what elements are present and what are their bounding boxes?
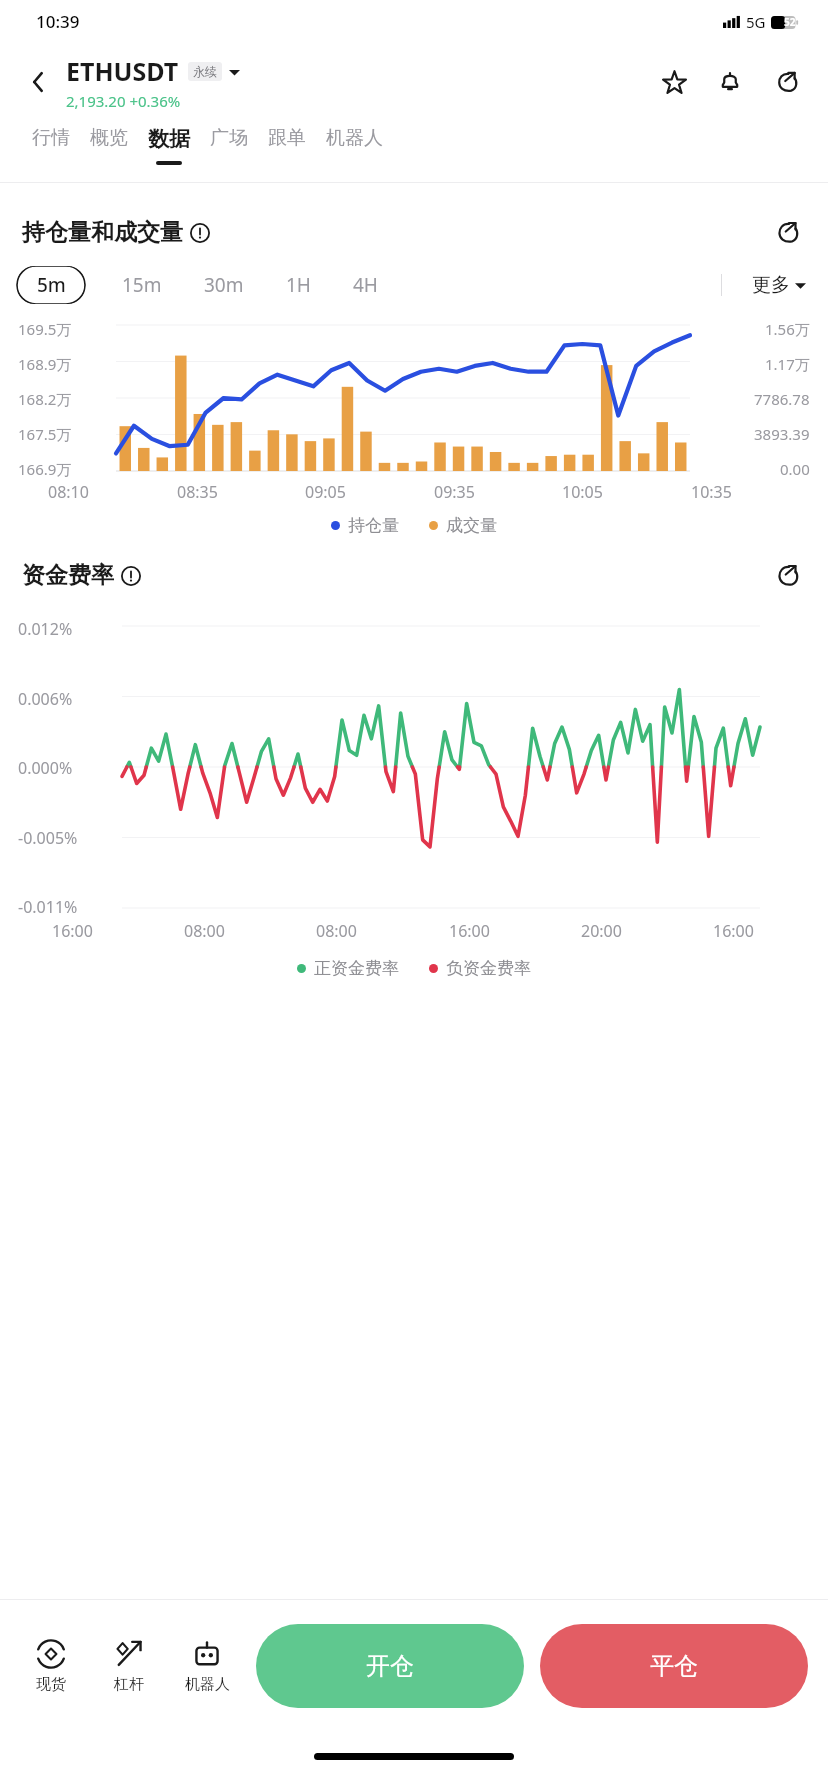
staticText: 16:00 (449, 920, 490, 942)
staticText: 08:00 (316, 920, 357, 942)
staticText: 跟单 (268, 126, 306, 150)
staticText: 10:35 (691, 481, 732, 503)
staticText: -0.011% (18, 896, 78, 918)
button[interactable]: Expand (764, 210, 808, 254)
staticText: 30m (204, 272, 244, 298)
staticText: 166.9万 (18, 459, 72, 479)
button[interactable]: Back (22, 65, 56, 99)
button[interactable]: 杠杆 (98, 1634, 160, 1698)
button[interactable]: 资金费率 (22, 561, 141, 590)
staticText: 概览 (90, 126, 128, 150)
staticText: 0.012% (18, 618, 73, 640)
button[interactable]: Favorite (652, 60, 696, 104)
staticText: 更多 (752, 273, 790, 297)
staticText: 168.9万 (18, 354, 72, 374)
staticText: 5G (746, 12, 766, 32)
staticText: 10:05 (562, 481, 603, 503)
button[interactable]: 持仓量和成交量 (22, 218, 210, 247)
staticText: 7786.78 (754, 389, 810, 409)
button[interactable]: 1H (272, 266, 325, 304)
staticText: 08:10 (48, 481, 89, 503)
staticText: 15m (122, 272, 162, 298)
staticText: 10:39 (36, 10, 80, 33)
button[interactable]: 平仓 (540, 1624, 808, 1708)
staticText: 16:00 (713, 920, 754, 942)
button[interactable]: 30m (190, 266, 258, 304)
staticText: 正资金费率 (314, 958, 399, 979)
staticText: 机器人 (185, 1675, 230, 1694)
staticText: 广场 (210, 126, 248, 150)
staticText: 52 (784, 15, 796, 29)
button[interactable]: Alerts (708, 60, 752, 104)
staticText: 持仓量 (348, 515, 399, 536)
button[interactable]: 4H (339, 266, 392, 304)
staticText: 3893.39 (754, 424, 810, 444)
staticText: 1.17万 (765, 354, 810, 374)
staticText: 行情 (32, 126, 70, 150)
staticText: 167.5万 (18, 424, 72, 444)
staticText: 现货 (36, 1675, 66, 1694)
staticText: 成交量 (446, 515, 497, 536)
staticText: 168.2万 (18, 389, 72, 409)
staticText: 4H (353, 272, 378, 298)
button[interactable]: Share (764, 60, 808, 104)
button[interactable]: 机器人 (316, 126, 393, 159)
button[interactable]: 现货 (20, 1634, 82, 1698)
staticText: 08:00 (184, 920, 225, 942)
staticText: 资金费率 (22, 561, 114, 590)
staticText: 1H (286, 272, 311, 298)
button[interactable]: 5m (16, 266, 86, 304)
staticText: 5m (37, 272, 66, 298)
staticText: 08:35 (177, 481, 218, 503)
button[interactable]: 跟单 (258, 126, 316, 159)
button[interactable]: 广场 (200, 126, 258, 159)
button[interactable]: 概览 (80, 126, 138, 159)
button[interactable]: Expand (764, 553, 808, 597)
staticText: 永续 (193, 64, 217, 79)
button[interactable]: 15m (108, 266, 176, 304)
staticText: ETHUSDT (66, 54, 179, 88)
staticText: 169.5万 (18, 319, 72, 339)
staticText: 开仓 (366, 1651, 414, 1681)
staticText: 杠杆 (114, 1675, 144, 1694)
staticText: 2,193.20 +0.36% (66, 91, 181, 111)
staticText: 数据 (148, 126, 190, 152)
staticText: 20:00 (581, 920, 622, 942)
button[interactable]: 更多 (748, 269, 810, 301)
staticText: 持仓量和成交量 (22, 218, 183, 247)
staticText: 0.00 (780, 459, 810, 479)
button[interactable]: 机器人 (176, 1634, 238, 1698)
button[interactable]: 行情 (22, 126, 80, 159)
staticText: 平仓 (650, 1651, 698, 1681)
staticText: 1.56万 (765, 319, 810, 339)
staticText: 09:35 (434, 481, 475, 503)
staticText: 0.000% (18, 757, 73, 779)
staticText: 负资金费率 (446, 958, 531, 979)
button[interactable]: 数据 (138, 126, 200, 165)
staticText: 16:00 (52, 920, 93, 942)
staticText: 09:05 (305, 481, 346, 503)
staticText: 0.006% (18, 688, 73, 710)
staticText: -0.005% (18, 827, 78, 849)
staticText: 机器人 (326, 126, 383, 150)
button[interactable]: 开仓 (256, 1624, 524, 1708)
